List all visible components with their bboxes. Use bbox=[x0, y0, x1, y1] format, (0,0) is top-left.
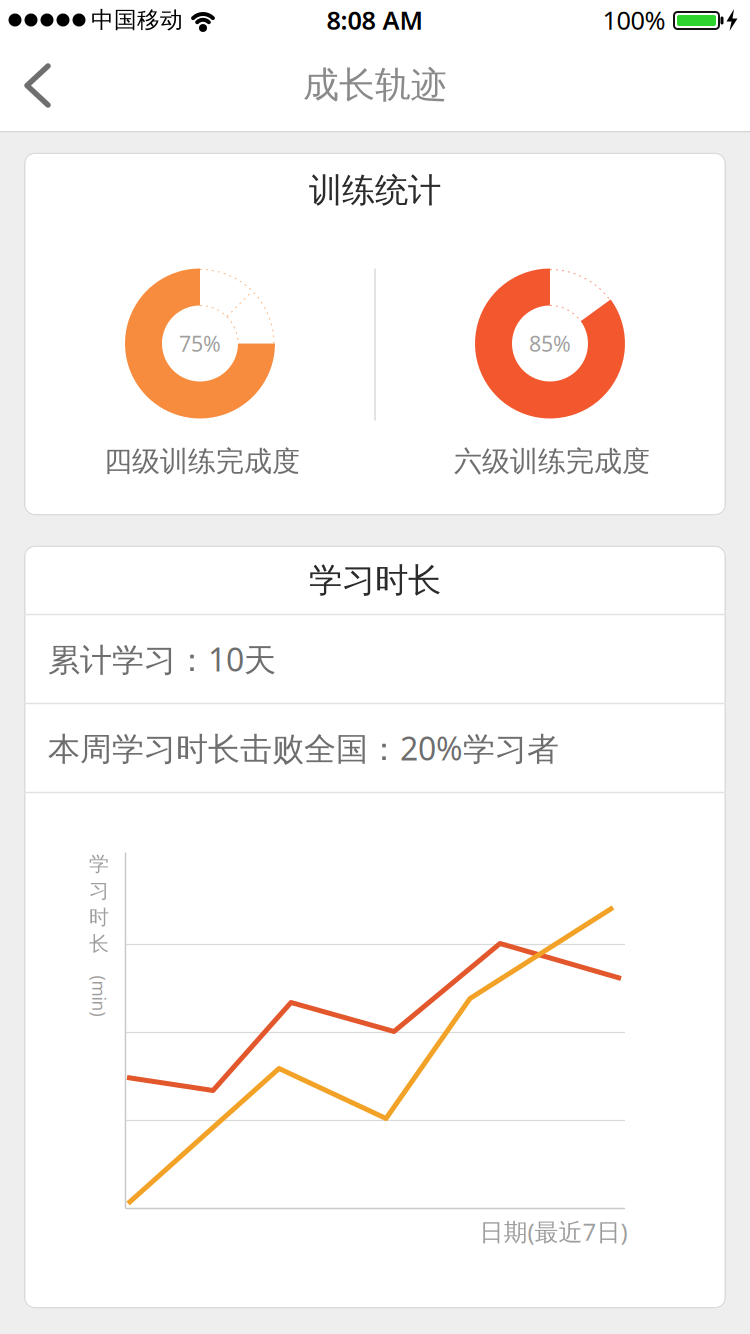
staticText: 100% bbox=[602, 3, 665, 37]
staticText: 四级训练完成度 bbox=[104, 444, 300, 479]
staticText: 8:08 AM bbox=[326, 3, 423, 37]
staticText: 85% bbox=[529, 329, 571, 358]
button[interactable]: Back bbox=[4, 52, 76, 119]
staticText: 累计学习：10天 bbox=[48, 638, 276, 680]
staticText: 六级训练完成度 bbox=[454, 444, 650, 479]
staticText: 中国移动 bbox=[91, 6, 183, 34]
staticText: 学 bbox=[89, 852, 109, 876]
staticText: (min) bbox=[78, 984, 119, 1007]
staticText: 习 bbox=[89, 878, 109, 903]
staticText: 日期(最近7日) bbox=[479, 1216, 627, 1247]
staticText: 成长轨迹 bbox=[303, 63, 447, 107]
staticText: 75% bbox=[179, 329, 221, 358]
staticText: 本周学习时长击败全国：20%学习者 bbox=[48, 727, 559, 769]
staticText: 长 bbox=[89, 932, 109, 956]
staticText: 学习时长 bbox=[309, 560, 441, 601]
staticText: 训练统计 bbox=[309, 170, 441, 211]
staticText: 时 bbox=[89, 905, 109, 930]
